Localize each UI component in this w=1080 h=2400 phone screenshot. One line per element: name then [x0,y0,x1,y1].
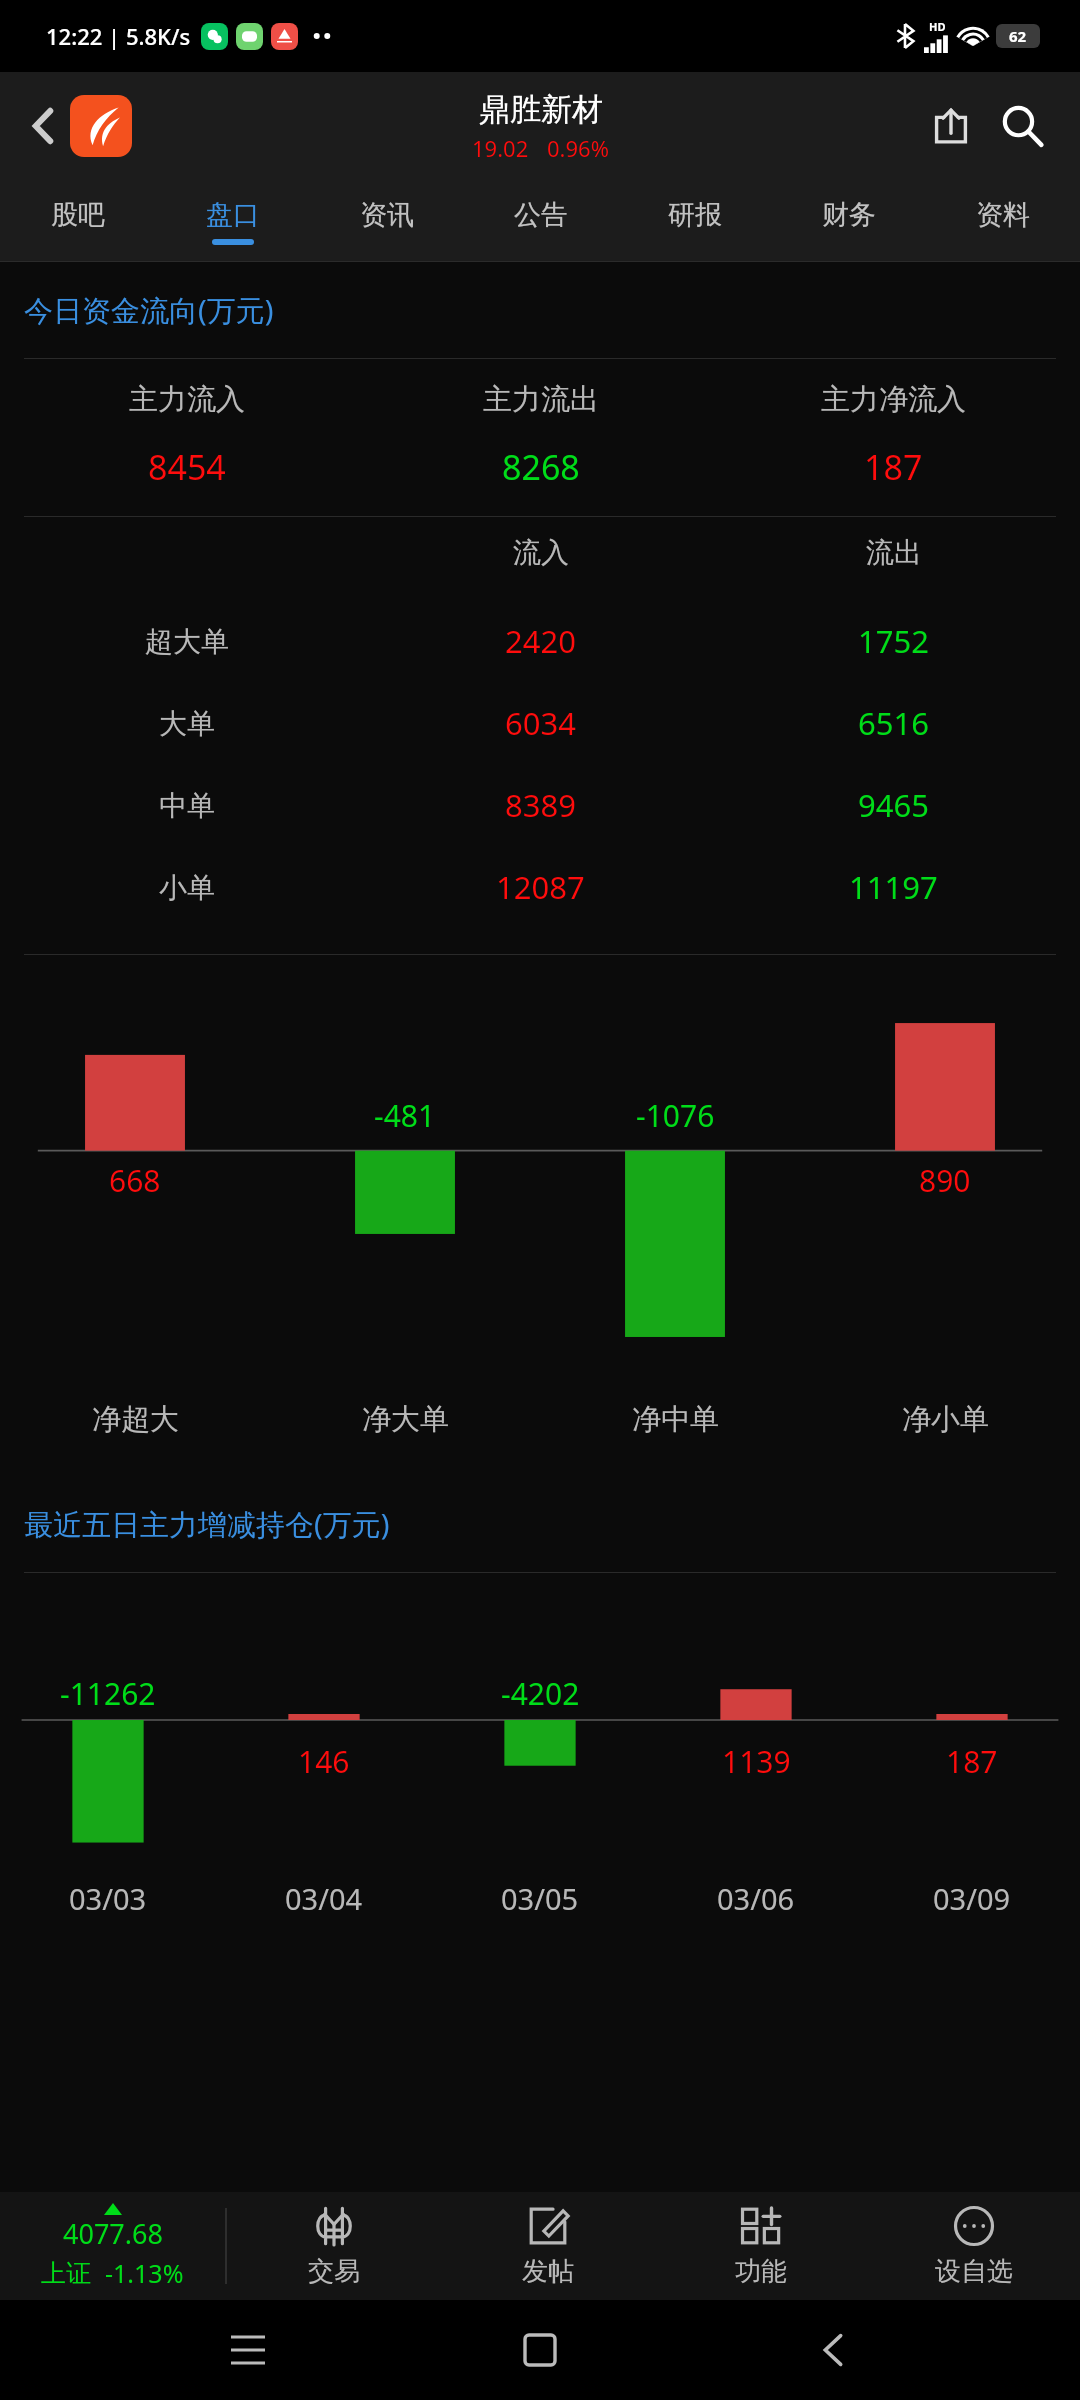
staticText: 财务 [822,198,876,232]
button[interactable]: 盘口 [155,180,310,262]
button[interactable]: App logo [70,95,132,157]
staticText: 上证 [41,2258,91,2289]
button[interactable]: 资料 [926,180,1080,262]
button[interactable]: 交易 [227,2192,441,2300]
button[interactable]: Home [495,2305,585,2395]
staticText: 公告 [514,198,568,232]
button[interactable]: Recents [203,2305,293,2395]
staticText: 鼎胜新材 [479,90,603,129]
button[interactable]: 大单 [10,682,1070,764]
staticText: 净小单 [902,1401,989,1438]
staticText: 设自选 [935,2255,1013,2288]
staticText: 6516 [858,702,929,744]
button[interactable]: Back [788,2305,878,2395]
staticText: 668 [109,1160,161,1201]
staticText: 流入 [513,535,569,570]
staticText: 交易 [308,2255,360,2288]
button[interactable]: 财务 [772,180,926,262]
staticText: 19.02 [472,133,529,163]
staticText: 62 [1009,26,1027,46]
button[interactable]: 中单 [10,764,1070,846]
staticText: 最近五日主力增减持仓(万元) [24,1504,390,1544]
staticText: -1076 [636,1095,715,1136]
staticText: 1139 [722,1741,791,1782]
staticText: 187 [864,444,923,490]
staticText: 12087 [496,866,585,908]
staticText: 6034 [505,702,576,744]
button[interactable]: Search [990,94,1054,158]
staticText: 187 [946,1741,998,1782]
staticText: 净大单 [362,1401,449,1438]
staticText: 03/03 [69,1879,147,1918]
button[interactable]: 股吧 [0,180,155,262]
staticText: 净中单 [632,1401,719,1438]
staticText: 资料 [976,198,1030,232]
button[interactable]: 设自选 [867,2192,1080,2300]
staticText: 8454 [148,444,226,490]
staticText: 2420 [505,620,576,662]
staticText: -481 [374,1095,436,1136]
staticText: 功能 [735,2255,787,2288]
staticText: 03/09 [933,1879,1011,1918]
staticText: -11262 [60,1673,156,1714]
staticText: 净超大 [92,1401,179,1438]
staticText: 主力流出 [483,381,599,418]
button[interactable]: 超大单 [10,600,1070,682]
staticText: HD [929,19,946,34]
staticText: 发帖 [522,2255,574,2288]
staticText: 1752 [858,620,929,662]
staticText: 股吧 [51,198,105,232]
staticText: 12:22 | 5.8K/s [46,21,191,51]
button[interactable]: 功能 [654,2192,867,2300]
staticText: 11197 [849,866,938,908]
staticText: 盘口 [206,198,260,232]
button[interactable]: 资讯 [310,180,464,262]
staticText: 0.96% [547,133,609,163]
staticText: 主力流入 [129,381,245,418]
staticText: 资讯 [360,198,414,232]
button[interactable]: 发帖 [441,2192,654,2300]
staticText: 小单 [159,870,215,905]
staticText: -4202 [501,1673,580,1714]
staticText: 研报 [668,198,722,232]
staticText: 主力净流入 [821,381,966,418]
staticText: 03/06 [717,1879,795,1918]
staticText: 890 [919,1160,971,1201]
staticText: 4077.68 [63,2215,163,2252]
staticText: 146 [298,1741,350,1782]
staticText: 8268 [502,444,580,490]
staticText: 03/04 [285,1879,363,1918]
button[interactable]: Back [14,97,72,155]
staticText: 9465 [858,784,929,826]
button[interactable]: 公告 [464,180,618,262]
staticText: 超大单 [145,624,229,659]
button[interactable]: Share [920,95,982,157]
button[interactable]: 4077.68 [0,2192,225,2300]
staticText: 中单 [159,788,215,823]
staticText: -1.13% [105,2256,184,2290]
staticText: 大单 [159,706,215,741]
button[interactable]: 小单 [10,846,1070,928]
button[interactable]: 研报 [618,180,772,262]
staticText: 流出 [866,535,922,570]
staticText: 今日资金流向(万元) [24,290,274,330]
staticText: 8389 [505,784,576,826]
staticText: 03/05 [501,1879,579,1918]
